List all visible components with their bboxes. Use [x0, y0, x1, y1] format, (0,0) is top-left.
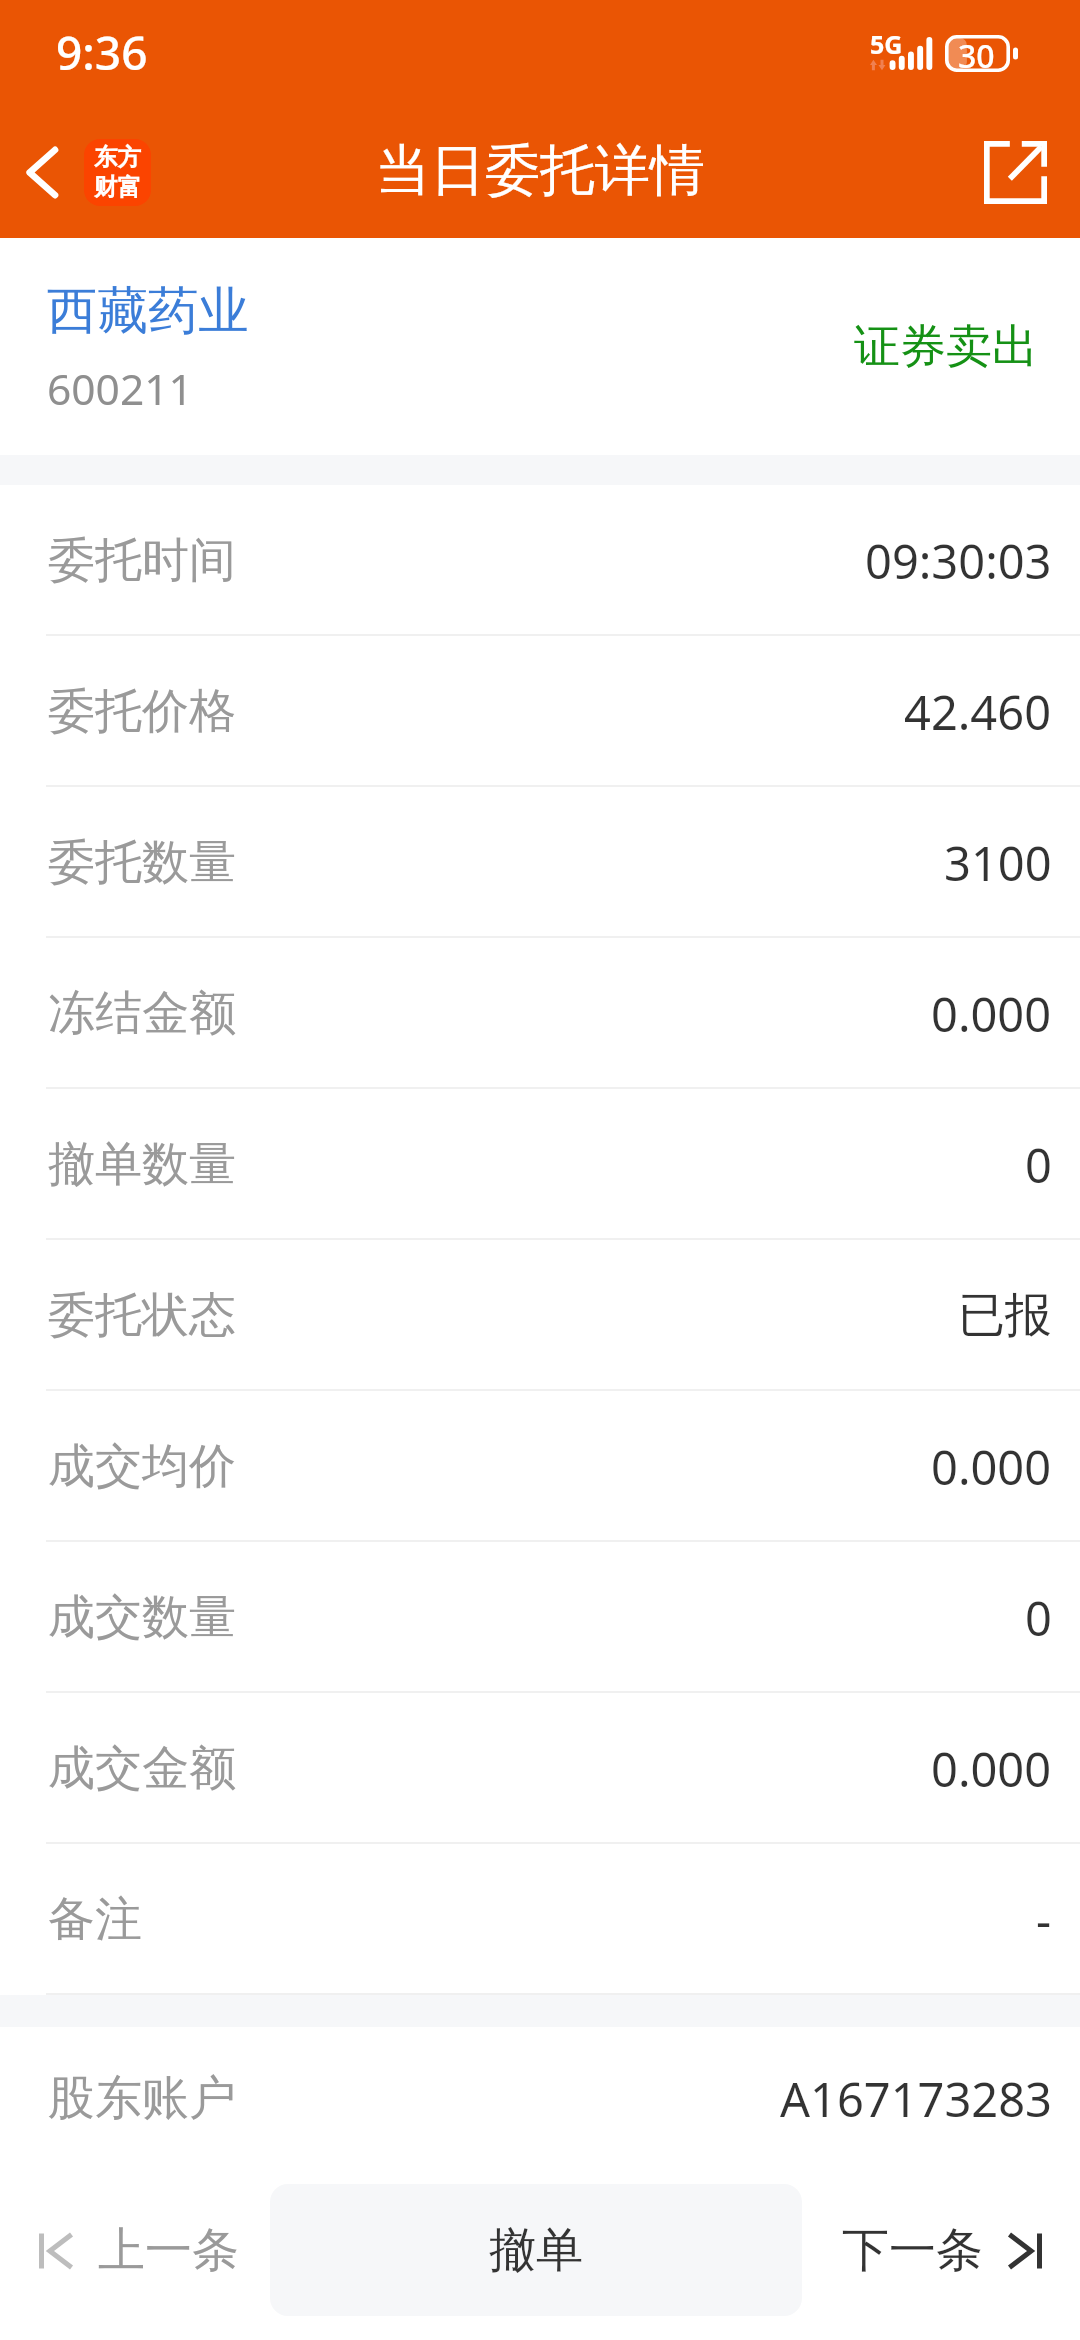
button[interactable]: 上一条 [0, 2199, 263, 2302]
staticText: 财富 [94, 172, 141, 202]
button[interactable]: 委托状态 [0, 1240, 1080, 1391]
staticText: 当日委托详情 [375, 136, 705, 205]
staticText: 5G [870, 27, 903, 61]
button[interactable]: 股东账户 [0, 2027, 1080, 2170]
staticText: 上一条 [98, 2221, 239, 2280]
button[interactable]: 分享 [968, 125, 1080, 220]
staticText: 证券卖出 [854, 318, 1038, 376]
staticText: 下一条 [842, 2221, 983, 2280]
staticText: 3100 [944, 831, 1052, 895]
staticText: 已报 [958, 1286, 1052, 1345]
staticText: 0 [1025, 1133, 1052, 1197]
staticText: 09:30:03 [865, 529, 1052, 593]
staticText: - [1036, 1888, 1052, 1952]
staticText: 委托数量 [48, 833, 236, 892]
button[interactable]: 成交金额 [0, 1693, 1080, 1844]
staticText: A167173283 [780, 2067, 1052, 2131]
staticText: 0.000 [931, 982, 1052, 1046]
button[interactable]: 撤单数量 [0, 1089, 1080, 1240]
staticText: 成交数量 [48, 1588, 236, 1647]
button[interactable]: 返回 [0, 125, 165, 220]
staticText: 成交均价 [48, 1437, 236, 1496]
button[interactable]: 冻结金额 [0, 938, 1080, 1089]
staticText: 委托状态 [48, 1286, 236, 1345]
button[interactable]: 委托时间 [0, 485, 1080, 636]
button[interactable]: 下一条 [818, 2199, 1080, 2302]
button[interactable]: 成交均价 [0, 1391, 1080, 1542]
staticText: 0.000 [931, 1737, 1052, 1801]
staticText: 成交金额 [48, 1739, 236, 1798]
staticText: 0.000 [931, 1435, 1052, 1499]
staticText: 委托价格 [48, 682, 236, 741]
staticText: 冻结金额 [48, 984, 236, 1043]
staticText: 西藏药业 [47, 279, 249, 343]
staticText: 0 [1025, 1586, 1052, 1650]
button[interactable]: 撤单 [270, 2184, 802, 2316]
other: 返回 [26, 145, 59, 200]
staticText: 30 [958, 34, 995, 78]
staticText: 9:36 [56, 21, 148, 84]
button[interactable]: 委托价格 [0, 636, 1080, 787]
staticText: 撤单数量 [48, 1135, 236, 1194]
staticText: 600211 [47, 360, 193, 418]
staticText: 42.460 [904, 680, 1052, 744]
staticText: 委托时间 [48, 531, 236, 590]
staticText: 撤单 [489, 2221, 583, 2280]
button[interactable]: 成交数量 [0, 1542, 1080, 1693]
button[interactable]: 备注 [0, 1844, 1080, 1995]
button[interactable]: 委托数量 [0, 787, 1080, 938]
staticText: 股东账户 [48, 2069, 236, 2128]
staticText: 东方 [94, 142, 141, 172]
button[interactable]: 西藏药业 [0, 238, 1080, 455]
staticText: 备注 [48, 1890, 142, 1949]
